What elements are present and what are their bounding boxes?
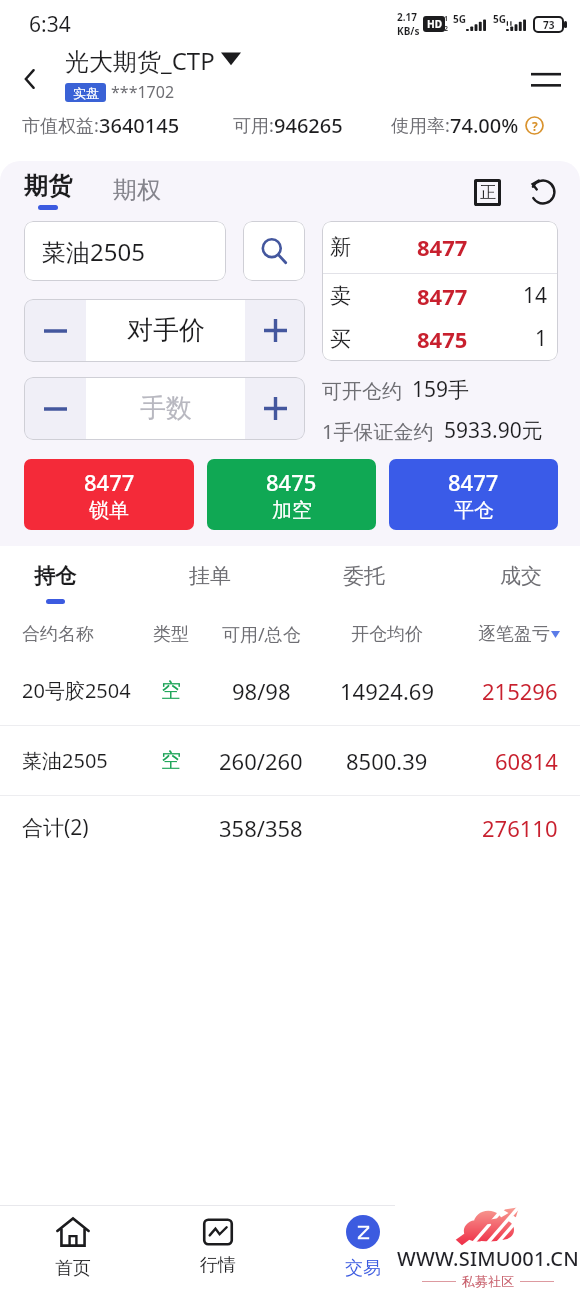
staticText: 20号胶2504 [22, 677, 131, 704]
staticText: 菜油2505 [22, 747, 108, 774]
staticText: 首页 [55, 1257, 91, 1280]
button[interactable]: 对手价 [86, 299, 245, 362]
staticText: 我的 [490, 1255, 526, 1278]
button[interactable]: 期货 [0, 161, 89, 223]
staticText: 私募社区 [462, 1273, 514, 1289]
staticText: 逐笔盈亏 [478, 623, 550, 646]
staticText: 8477 [417, 232, 468, 262]
button[interactable]: 首页 [0, 1206, 145, 1289]
staticText: 菜油2505 [42, 235, 145, 268]
staticText: 358/358 [219, 813, 303, 843]
staticText: 委托 [343, 563, 385, 589]
button[interactable]: 持仓 [8, 546, 102, 612]
staticText: 可开仓约 [322, 379, 402, 404]
staticText: 可用: [233, 113, 274, 138]
staticText: HD [427, 17, 442, 31]
staticText: 215296 [482, 676, 558, 706]
staticText: 1手保证金约 [322, 418, 434, 445]
staticText: 期货 [24, 171, 72, 201]
button[interactable]: 8477 [24, 459, 194, 530]
staticText: 锁单 [89, 498, 129, 523]
staticText: 8475 [266, 467, 317, 497]
button[interactable]: 20号胶2504 [0, 656, 580, 725]
staticText: 新 [330, 234, 351, 260]
staticText: 挂单 [189, 563, 231, 589]
staticText: 使用率: [391, 113, 450, 138]
staticText: 合约名称 [22, 623, 94, 646]
staticText: 开仓均价 [351, 623, 423, 646]
staticText: ? [532, 118, 538, 134]
staticText: 1 [535, 324, 548, 353]
staticText: 市值权益: [22, 113, 99, 138]
staticText: 持仓 [34, 563, 76, 589]
button[interactable]: 手数 [86, 377, 245, 440]
staticText: 合计(2) [22, 813, 89, 842]
button[interactable]: 菜油2505 [0, 726, 580, 795]
button[interactable]: 期权 [89, 161, 174, 223]
staticText: 98/98 [232, 676, 291, 706]
staticText: 2 [444, 24, 449, 34]
button[interactable]: Menu [522, 55, 570, 103]
button[interactable]: 8477 [389, 459, 558, 530]
staticText: 6:34 [29, 10, 71, 39]
staticText: WWW.SIMU001.CN [397, 1245, 579, 1272]
staticText: 期权 [113, 175, 161, 205]
staticText: 8477 [448, 467, 499, 497]
staticText: 14 [523, 281, 548, 310]
button[interactable]: Increase [245, 299, 305, 362]
staticText: 手数 [140, 392, 192, 425]
button[interactable]: 成交 [474, 546, 568, 612]
button[interactable]: Decrease [24, 299, 86, 362]
staticText: 276110 [482, 813, 558, 843]
staticText: 1 [444, 14, 449, 24]
staticText: 946265 [274, 112, 343, 139]
button[interactable]: 我的 [435, 1206, 580, 1289]
button[interactable]: 委托 [317, 546, 411, 612]
staticText: 买 [330, 326, 351, 352]
staticText: 74.00% [450, 112, 519, 139]
staticText: 正 [480, 183, 496, 203]
staticText: 60814 [495, 746, 558, 776]
staticText: 73 [543, 18, 555, 32]
button[interactable]: 8475 [207, 459, 376, 530]
staticText: 可用/总仓 [222, 622, 301, 647]
button[interactable]: 交易 [290, 1206, 435, 1289]
staticText: 空 [161, 748, 181, 773]
button[interactable]: Increase [245, 377, 305, 440]
staticText: 8500.39 [346, 746, 428, 776]
staticText: 5933.90元 [444, 416, 543, 445]
staticText: 5G [453, 12, 466, 26]
staticText: 光大期货_CTP [65, 44, 215, 77]
staticText: 159手 [412, 375, 470, 404]
staticText: 行情 [200, 1254, 236, 1277]
staticText: 260/260 [219, 746, 303, 776]
staticText: 加空 [272, 498, 312, 523]
staticText: 5G [493, 12, 506, 26]
staticText: 平仓 [454, 498, 494, 523]
staticText: 成交 [500, 563, 542, 589]
button[interactable]: Back [8, 57, 52, 101]
staticText: 8477 [84, 467, 135, 497]
button[interactable]: Search [243, 221, 305, 281]
staticText: 对手价 [127, 314, 205, 347]
button[interactable]: 菜油2505 [24, 221, 226, 281]
staticText: 空 [161, 678, 181, 703]
button[interactable]: Order mode [462, 167, 512, 217]
staticText: 卖 [330, 283, 351, 309]
staticText: 交易 [345, 1257, 381, 1280]
staticText: 实盘 [73, 85, 99, 101]
button[interactable]: 挂单 [163, 546, 257, 612]
staticText: 2.17 [397, 10, 417, 24]
staticText: 类型 [153, 623, 189, 646]
staticText: 3640145 [99, 112, 180, 139]
staticText: 8475 [417, 324, 468, 354]
button[interactable]: 行情 [145, 1206, 290, 1289]
staticText: KB/s [397, 24, 420, 38]
button[interactable]: Decrease [24, 377, 86, 440]
staticText: 14924.69 [340, 676, 434, 706]
staticText: ***1702 [111, 81, 175, 103]
button[interactable]: Refresh [518, 167, 568, 217]
staticText: 8477 [417, 281, 468, 311]
